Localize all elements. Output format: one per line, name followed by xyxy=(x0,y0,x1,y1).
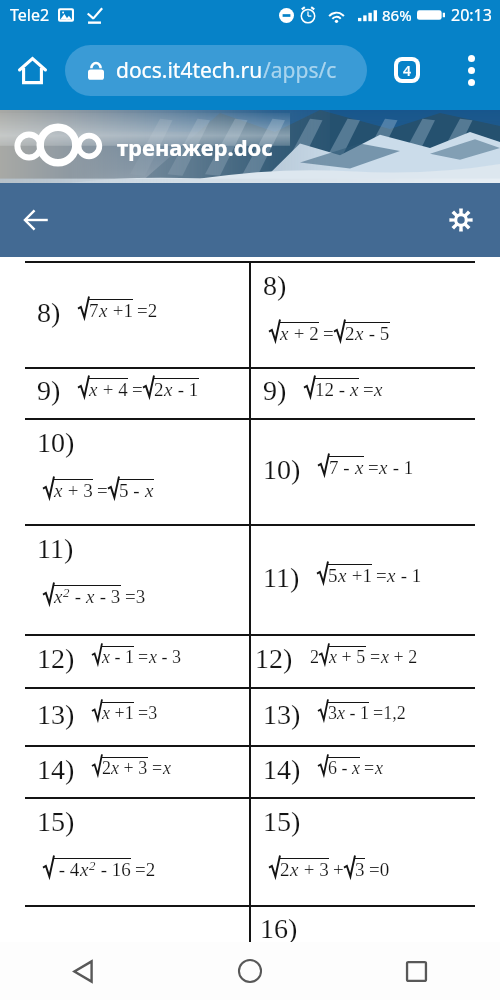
staticText: =2 xyxy=(135,859,156,880)
staticText: + 2 xyxy=(389,647,418,667)
staticText: =0 xyxy=(369,859,390,880)
staticText: +1 xyxy=(347,565,372,586)
staticText: 15) xyxy=(37,806,75,837)
button[interactable]: Back xyxy=(13,197,59,243)
staticText: 2 xyxy=(280,859,290,880)
staticText: - 1 xyxy=(396,565,422,586)
staticText: docs.it4tech.ru xyxy=(116,56,263,85)
staticText: = xyxy=(368,457,379,478)
staticText: x xyxy=(329,647,337,667)
staticText: x xyxy=(86,586,95,607)
staticText: - 16 xyxy=(96,859,131,880)
staticText: x xyxy=(290,859,299,880)
staticText: 7 xyxy=(89,300,99,321)
staticText: + 3 xyxy=(119,758,148,778)
staticText: 9) xyxy=(37,375,61,406)
staticText: =2 xyxy=(137,300,158,321)
staticText: 2 xyxy=(89,858,96,872)
staticText: 2 xyxy=(310,647,319,667)
staticText: 10) xyxy=(263,454,301,485)
staticText: - 1 xyxy=(388,457,414,478)
staticText: x xyxy=(374,379,383,400)
staticText: = xyxy=(363,379,374,400)
staticText: = xyxy=(376,565,387,586)
staticText: +1 xyxy=(110,703,134,723)
staticText: 2 xyxy=(102,758,111,778)
button[interactable]: Tabs xyxy=(386,49,428,91)
staticText: x xyxy=(164,379,173,400)
staticText: + 5 xyxy=(337,647,366,667)
staticText: + 2 xyxy=(289,323,319,344)
staticText: 16) xyxy=(260,913,298,942)
staticText: 13) xyxy=(263,699,301,730)
staticText: - 1 xyxy=(110,647,134,667)
button[interactable]: Back xyxy=(0,942,166,1000)
button[interactable]: docs.it4tech.ru xyxy=(65,45,367,96)
staticText: = xyxy=(152,758,163,778)
staticText: x xyxy=(145,480,154,501)
staticText: 20:13 xyxy=(451,4,492,26)
staticText: x xyxy=(375,758,383,778)
button[interactable]: More options xyxy=(450,30,492,110)
button[interactable]: Settings xyxy=(439,198,483,242)
staticText: = xyxy=(138,647,149,667)
staticText: Tele2 xyxy=(10,4,50,26)
staticText: x xyxy=(102,647,110,667)
staticText: тренажер.doc xyxy=(117,132,273,162)
staticText: 7 - xyxy=(329,457,355,478)
staticText: x xyxy=(80,859,89,880)
staticText: x xyxy=(379,457,388,478)
staticText: 4 xyxy=(403,61,412,79)
staticText: = xyxy=(323,323,334,344)
staticText: x xyxy=(99,300,108,321)
staticText: 3 xyxy=(355,859,365,880)
staticText: 10) xyxy=(37,427,75,458)
staticText: 5 xyxy=(328,565,338,586)
staticText: - 1 xyxy=(345,703,369,723)
staticText: x xyxy=(338,565,347,586)
staticText: - 3 xyxy=(157,647,181,667)
staticText: = xyxy=(364,758,375,778)
staticText: =3 xyxy=(125,586,146,607)
staticText: 12) xyxy=(255,643,293,674)
staticText: 5 - xyxy=(119,480,145,501)
staticText: x xyxy=(350,379,359,400)
staticText: 9) xyxy=(263,375,287,406)
staticText: 13) xyxy=(37,699,75,730)
staticText: =3 xyxy=(138,703,158,723)
staticText: x xyxy=(387,565,396,586)
staticText: x xyxy=(163,758,171,778)
staticText: x xyxy=(54,586,63,607)
staticText: - xyxy=(70,586,86,607)
staticText: x xyxy=(355,457,364,478)
staticText: + xyxy=(333,859,344,880)
staticText: 14) xyxy=(263,754,301,785)
staticText: = xyxy=(370,647,381,667)
staticText: x xyxy=(54,480,63,501)
staticText: x xyxy=(111,758,119,778)
staticText: x xyxy=(102,703,110,723)
staticText: - 4 xyxy=(54,859,80,880)
staticText: 15) xyxy=(263,806,301,837)
staticText: x xyxy=(337,703,345,723)
staticText: 12) xyxy=(37,643,75,674)
staticText: +1 xyxy=(108,300,133,321)
staticText: = xyxy=(132,379,143,400)
staticText: 8) xyxy=(263,270,287,301)
staticText: 2 xyxy=(63,585,70,599)
staticText: = xyxy=(97,480,108,501)
staticText: x xyxy=(355,323,364,344)
button[interactable]: Recent apps xyxy=(333,942,500,1000)
staticText: 2 xyxy=(154,379,164,400)
staticText: =1,2 xyxy=(373,703,406,723)
staticText: 14) xyxy=(37,754,75,785)
staticText: 8) xyxy=(37,297,61,328)
staticText: 3 xyxy=(328,703,337,723)
staticText: 11) xyxy=(37,533,74,564)
staticText: + 4 xyxy=(98,379,128,400)
button[interactable]: Home xyxy=(0,30,65,110)
button[interactable]: Home xyxy=(166,942,333,1000)
staticText: x xyxy=(352,758,360,778)
staticText: 86% xyxy=(382,5,412,25)
staticText: - 5 xyxy=(364,323,390,344)
